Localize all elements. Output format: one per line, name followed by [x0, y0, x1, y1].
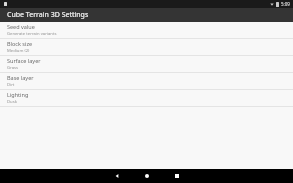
button[interactable]: Base layer: [0, 73, 293, 89]
button[interactable]: Block size: [0, 39, 293, 55]
button[interactable]: Back: [102, 169, 132, 183]
staticText: Base layer: [7, 74, 34, 81]
button[interactable]: Lighting: [0, 90, 293, 106]
staticText: Dirt: [7, 82, 15, 88]
staticText: Cube Terrain 3D Settings: [7, 10, 89, 20]
staticText: Surface layer: [7, 57, 41, 64]
staticText: Medium (2): [7, 48, 30, 54]
staticText: 5:09: [281, 1, 290, 7]
staticText: Dusk: [7, 99, 17, 105]
staticText: Generate terrain variants: [7, 31, 57, 37]
button[interactable]: Seed value: [0, 22, 293, 38]
staticText: Block size: [7, 40, 33, 47]
button[interactable]: Home: [132, 169, 162, 183]
staticText: Grass: [7, 65, 19, 71]
button[interactable]: Surface layer: [0, 56, 293, 72]
staticText: Seed value: [7, 23, 35, 30]
staticText: Lighting: [7, 91, 29, 98]
button[interactable]: Recent apps: [162, 169, 192, 183]
